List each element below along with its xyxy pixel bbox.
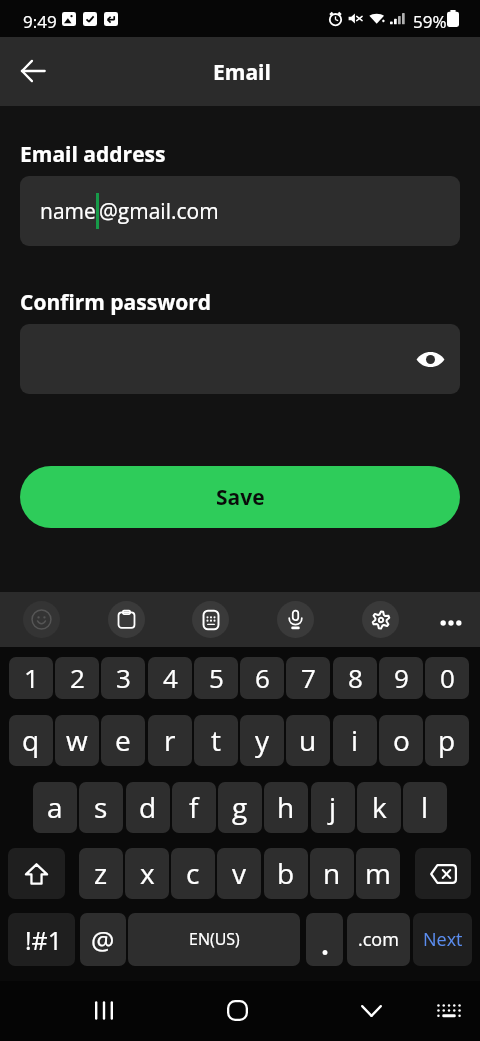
button[interactable]: Home [213,986,262,1035]
button[interactable]: j [311,782,355,833]
button[interactable]: e [101,715,145,766]
button[interactable]: 6 [240,657,284,699]
staticText: Confirm password [20,288,211,317]
staticText: 0 [440,660,455,695]
button[interactable]: c [171,848,215,899]
button[interactable]: Keyboard tool [362,601,399,638]
button[interactable]: Keyboard tool [192,601,229,638]
staticText: e [115,721,131,759]
button[interactable]: name [20,176,460,246]
staticText: d [139,788,157,826]
button[interactable]: s [79,782,123,833]
staticText: Email address [20,140,166,169]
button[interactable]: t [194,715,238,766]
button[interactable]: d [126,782,170,833]
staticText: .com [358,927,399,952]
button[interactable]: b [264,848,308,899]
staticText: z [94,854,108,892]
button[interactable]: k [357,782,401,833]
button[interactable]: More options [429,601,473,645]
button[interactable]: o [379,715,423,766]
staticText: f [189,788,199,826]
staticText: @gmail.com [99,197,219,226]
staticText: q [22,721,40,759]
staticText: u [299,721,317,759]
button[interactable]: .com [347,913,410,966]
button[interactable]: 0 [425,657,469,699]
button[interactable]: Show password [408,337,452,381]
button[interactable]: 3 [101,657,145,699]
button[interactable]: m [356,848,400,899]
staticText: 9 [394,660,409,695]
button[interactable]: @ [80,913,126,966]
button[interactable]: l [403,782,447,833]
staticText: 5 [209,660,224,695]
staticText: i [351,721,359,759]
staticText: o [393,721,410,759]
staticText: EN(US) [189,928,240,950]
button[interactable]: Backspace [415,848,471,899]
staticText: h [277,788,295,826]
staticText: Save [216,483,265,512]
button[interactable]: Save [20,466,460,528]
button[interactable]: Hide keyboard [347,986,396,1035]
button[interactable]: 9 [379,657,423,699]
staticText: 9:49 [23,10,57,33]
staticText: j [329,788,337,826]
button[interactable]: 7 [286,657,330,699]
staticText: c [186,854,200,892]
button[interactable]: w [55,715,99,766]
button[interactable]: 5 [194,657,238,699]
button[interactable]: Shift [8,848,65,899]
button[interactable]: r [148,715,192,766]
button[interactable]: n [310,848,354,899]
button[interactable]: 4 [148,657,192,699]
button[interactable]: Recent apps [79,986,128,1035]
button[interactable]: x [125,848,169,899]
staticText: k [372,788,387,826]
staticText: 4 [163,660,178,695]
staticText: g [232,788,248,826]
button[interactable]: Next [413,913,472,966]
staticText: v [232,854,246,892]
button[interactable]: Show password [20,324,460,394]
staticText: s [94,788,108,826]
staticText: !#1 [25,923,63,957]
staticText: m [365,854,391,892]
button[interactable]: Period [306,913,343,966]
staticText: x [140,854,155,892]
staticText: 6 [255,660,270,695]
button[interactable]: a [33,782,77,833]
staticText: n [323,854,341,892]
staticText: r [164,721,176,759]
button[interactable]: g [218,782,262,833]
button[interactable]: EN(US) [128,913,300,966]
button[interactable]: Change keyboard [424,986,473,1035]
staticText: Email [213,58,271,87]
button[interactable]: z [79,848,123,899]
staticText: l [421,788,429,826]
button[interactable]: f [172,782,216,833]
button[interactable]: q [9,715,53,766]
button[interactable]: Keyboard tool [23,601,60,638]
staticText: 1 [24,660,39,695]
button[interactable]: !#1 [8,913,75,966]
staticText: 8 [348,660,363,695]
button[interactable]: 1 [9,657,53,699]
staticText: 3 [116,660,131,695]
button[interactable]: Keyboard tool [277,601,314,638]
staticText: 2 [70,660,85,695]
staticText: y [255,721,270,759]
button[interactable]: i [333,715,377,766]
button[interactable]: Keyboard tool [108,601,145,638]
button[interactable]: v [217,848,261,899]
button[interactable]: 8 [333,657,377,699]
staticText: w [66,721,88,759]
button[interactable]: 2 [55,657,99,699]
button[interactable]: p [425,715,469,766]
button[interactable]: u [286,715,330,766]
staticText: 59% [413,10,447,33]
button[interactable]: y [240,715,284,766]
button[interactable]: h [264,782,308,833]
button[interactable]: Back [9,47,57,95]
